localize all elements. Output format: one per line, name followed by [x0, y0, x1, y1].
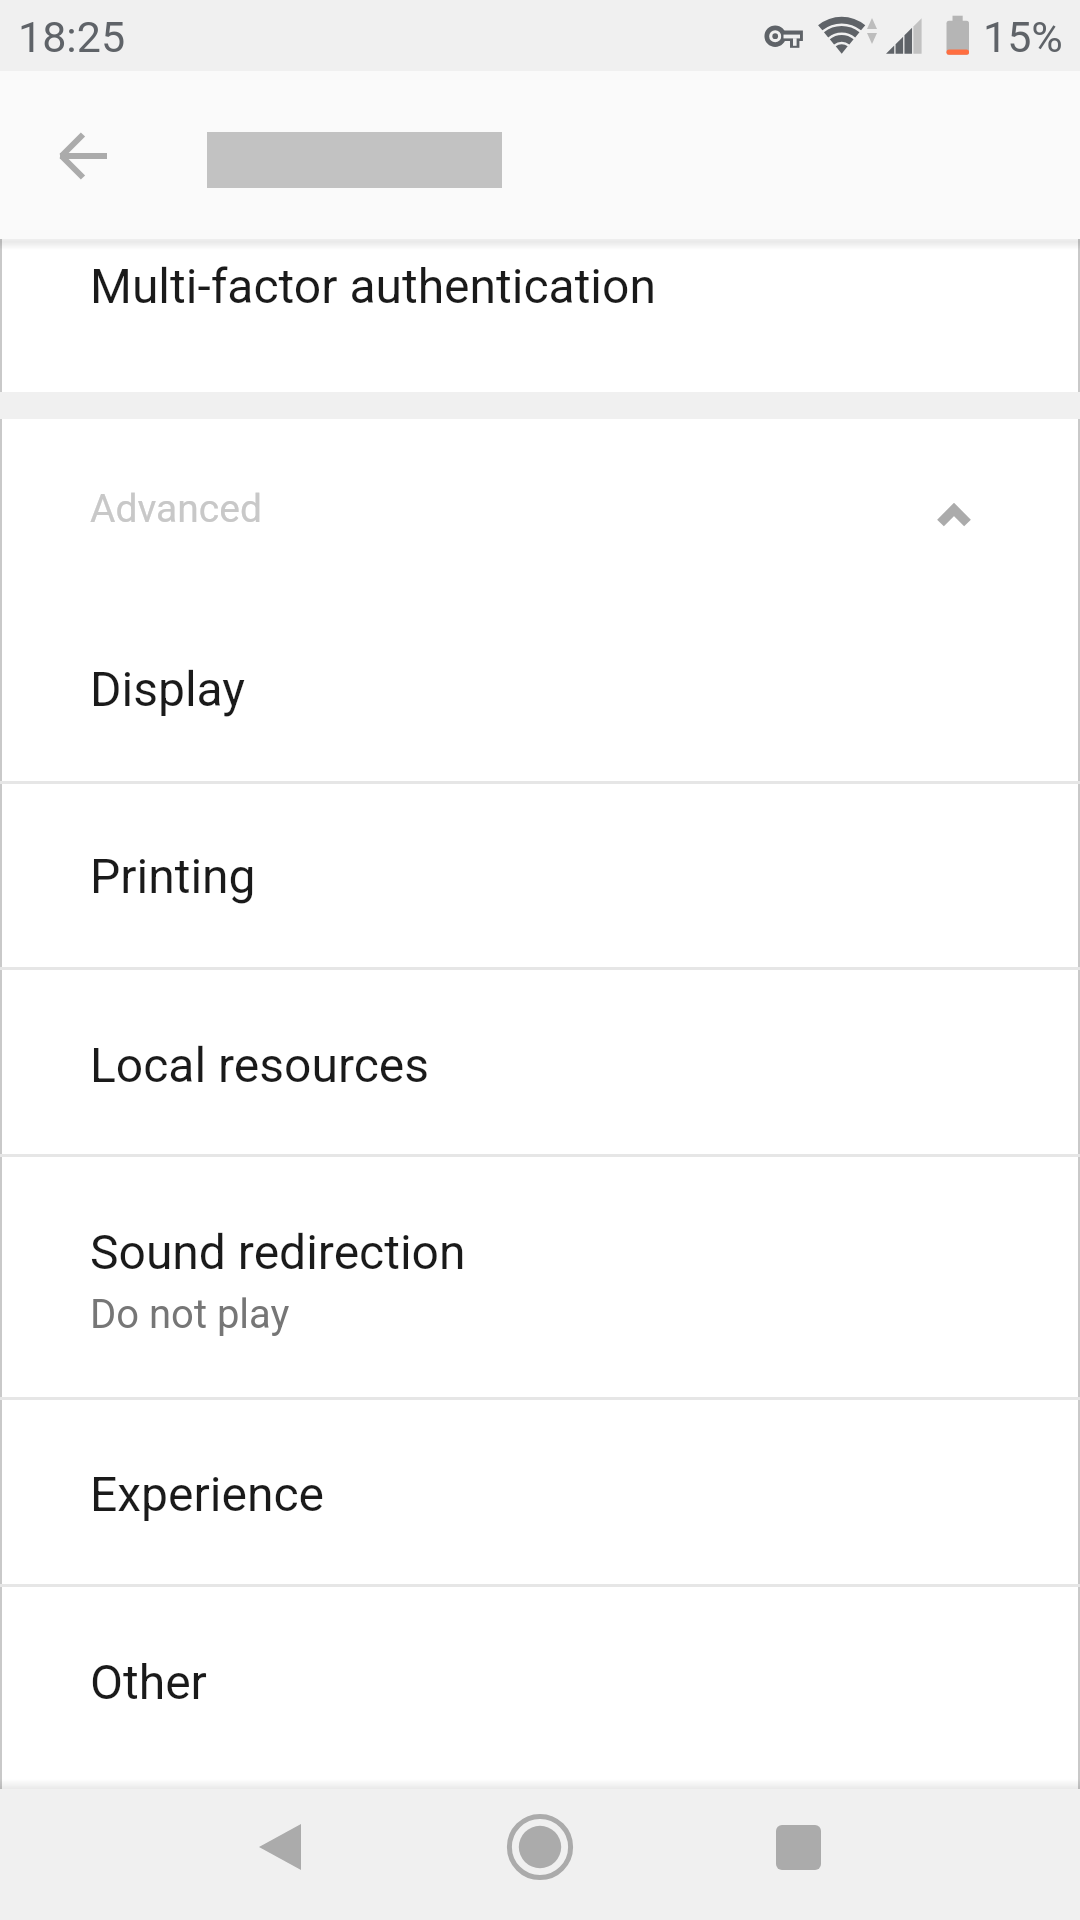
- button[interactable]: Advanced: [0, 419, 1080, 598]
- staticText: Printing: [90, 848, 256, 904]
- staticText: Multi-factor authentication: [90, 258, 656, 314]
- staticText: 18:25: [18, 12, 126, 62]
- staticText: Experience: [90, 1466, 324, 1522]
- staticText: Display: [90, 661, 246, 717]
- staticText: Do not play: [90, 1291, 290, 1338]
- staticText: Other: [90, 1654, 207, 1710]
- button[interactable]: Sound redirection: [0, 1156, 1080, 1397]
- staticText: Local resources: [90, 1037, 430, 1093]
- button[interactable]: Back: [232, 1799, 328, 1895]
- staticText: 15%: [983, 12, 1063, 62]
- button[interactable]: Other: [0, 1586, 1080, 1789]
- button[interactable]: Recent apps: [750, 1799, 846, 1895]
- button[interactable]: Navigate up: [36, 108, 132, 204]
- staticText: Sound redirection: [90, 1224, 466, 1280]
- button[interactable]: Experience: [0, 1399, 1080, 1584]
- button[interactable]: Multi-factor authentication: [0, 246, 1080, 392]
- button[interactable]: Display: [0, 598, 1080, 781]
- staticText: Advanced: [90, 486, 262, 532]
- button[interactable]: Printing: [0, 783, 1080, 967]
- button[interactable]: Home: [492, 1799, 588, 1895]
- button[interactable]: Local resources: [0, 969, 1080, 1154]
